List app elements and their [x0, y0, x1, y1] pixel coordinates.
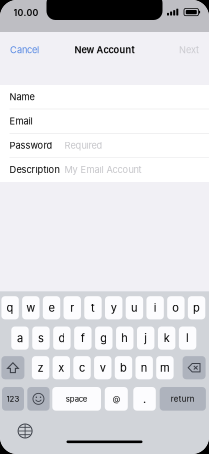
button[interactable]: Numbers [2, 387, 24, 411]
button[interactable]: i [146, 296, 164, 319]
staticText: r [70, 301, 74, 314]
staticText: h [121, 331, 128, 345]
button[interactable]: At sign [105, 387, 128, 411]
staticText: 10.00 [13, 7, 38, 18]
staticText: c [79, 361, 85, 374]
button[interactable]: space [52, 387, 101, 411]
button[interactable]: Email [0, 109, 209, 133]
staticText: . [143, 392, 146, 406]
staticText: 123 [6, 394, 19, 404]
staticText: Email [9, 116, 32, 127]
button[interactable]: s [32, 326, 50, 350]
button[interactable]: y [105, 296, 122, 319]
staticText: Cancel [10, 44, 39, 55]
staticText: s [38, 331, 44, 345]
staticText: j [144, 331, 147, 345]
button[interactable]: h [116, 326, 133, 350]
button[interactable]: Delete [183, 356, 206, 379]
staticText: e [48, 301, 54, 314]
staticText: Required [64, 140, 102, 151]
staticText: q [7, 301, 14, 314]
button[interactable]: Password [0, 133, 209, 157]
button[interactable]: f [74, 326, 91, 350]
staticText: w [26, 301, 35, 314]
button[interactable]: j [137, 326, 154, 350]
button[interactable]: c [73, 356, 91, 379]
button[interactable]: d [53, 326, 71, 350]
staticText: m [160, 361, 170, 374]
button[interactable]: p [188, 296, 205, 319]
staticText: t [91, 301, 95, 314]
staticText: g [100, 331, 107, 345]
button[interactable]: n [135, 356, 153, 379]
staticText: f [81, 331, 85, 345]
staticText: i [154, 301, 157, 314]
staticText: z [38, 361, 44, 374]
staticText: Description [9, 164, 59, 175]
button[interactable]: v [94, 356, 111, 379]
button[interactable]: Period [133, 387, 156, 411]
staticText: b [120, 361, 127, 374]
staticText: v [100, 361, 106, 374]
button[interactable]: e [43, 296, 60, 319]
staticText: Next [179, 44, 199, 55]
button[interactable]: return [160, 387, 206, 411]
staticText: k [164, 331, 170, 345]
button[interactable]: Cancel [0, 41, 50, 59]
button[interactable]: a [11, 326, 29, 350]
button[interactable]: Emoji [27, 387, 50, 411]
staticText: p [193, 301, 200, 314]
button[interactable]: Shift [1, 356, 24, 379]
staticText: n [141, 361, 148, 374]
button[interactable]: Description [0, 158, 209, 182]
button[interactable]: z [32, 356, 49, 379]
button[interactable]: t [84, 296, 102, 319]
staticText: return [171, 394, 195, 404]
button[interactable]: x [53, 356, 70, 379]
staticText: a [17, 331, 23, 345]
staticText: @ [113, 394, 120, 404]
button[interactable]: l [179, 326, 196, 350]
staticText: New Account [74, 44, 134, 55]
button[interactable]: r [64, 296, 81, 319]
staticText: Name [9, 91, 34, 102]
button[interactable]: m [156, 356, 174, 379]
staticText: l [186, 331, 189, 345]
button[interactable]: g [95, 326, 112, 350]
staticText: y [111, 301, 117, 314]
staticText: My Email Account [64, 164, 141, 175]
button[interactable]: q [1, 296, 19, 319]
staticText: u [131, 301, 138, 314]
button[interactable]: Switch keyboard [18, 423, 33, 438]
button[interactable]: b [115, 356, 132, 379]
staticText: Password [9, 140, 52, 151]
button[interactable]: o [167, 296, 185, 319]
staticText: x [58, 361, 64, 374]
button[interactable]: w [22, 296, 39, 319]
button[interactable]: Name [0, 85, 209, 109]
staticText: d [58, 331, 65, 345]
staticText: space [66, 394, 88, 404]
staticText: o [172, 301, 179, 314]
button[interactable]: u [126, 296, 143, 319]
button[interactable]: Next [159, 41, 209, 59]
button[interactable]: k [158, 326, 175, 350]
